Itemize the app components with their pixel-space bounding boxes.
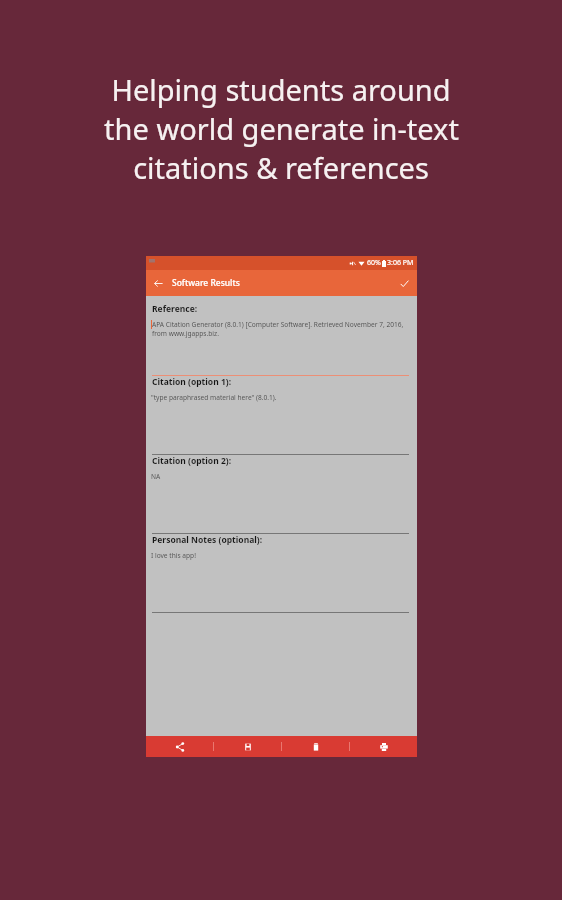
staticText: 3:06 PM bbox=[387, 258, 414, 268]
button[interactable]: Reference: bbox=[146, 303, 417, 376]
staticText: Helping students around bbox=[111, 70, 451, 109]
button[interactable]: Save bbox=[214, 736, 281, 757]
button[interactable]: Citation (option 2): bbox=[146, 455, 417, 534]
staticText: Software Results bbox=[172, 277, 240, 289]
staticText: citations & references bbox=[133, 148, 429, 187]
button[interactable]: Personal Notes (optional): bbox=[146, 534, 417, 613]
staticText: "type paraphrased material here" (8.0.1)… bbox=[151, 393, 277, 402]
button[interactable]: Print bbox=[350, 736, 417, 757]
staticText: NA bbox=[151, 472, 161, 481]
button[interactable]: Share bbox=[146, 736, 213, 757]
staticText: 60% bbox=[367, 258, 381, 268]
staticText: Citation (option 1): bbox=[152, 376, 232, 388]
staticText: Personal Notes (optional): bbox=[152, 534, 263, 546]
staticText: Citation (option 2): bbox=[152, 455, 232, 467]
staticText: the world generate in-text bbox=[104, 109, 459, 148]
staticText: I love this app! bbox=[151, 551, 196, 560]
staticText: Reference: bbox=[152, 303, 198, 315]
button[interactable]: Delete bbox=[282, 736, 349, 757]
button[interactable]: Back bbox=[150, 275, 166, 291]
button[interactable]: Done bbox=[396, 275, 412, 291]
button[interactable]: Citation (option 1): bbox=[146, 376, 417, 455]
staticText: APA Citation Generator (8.0.1) [Computer… bbox=[152, 320, 409, 338]
